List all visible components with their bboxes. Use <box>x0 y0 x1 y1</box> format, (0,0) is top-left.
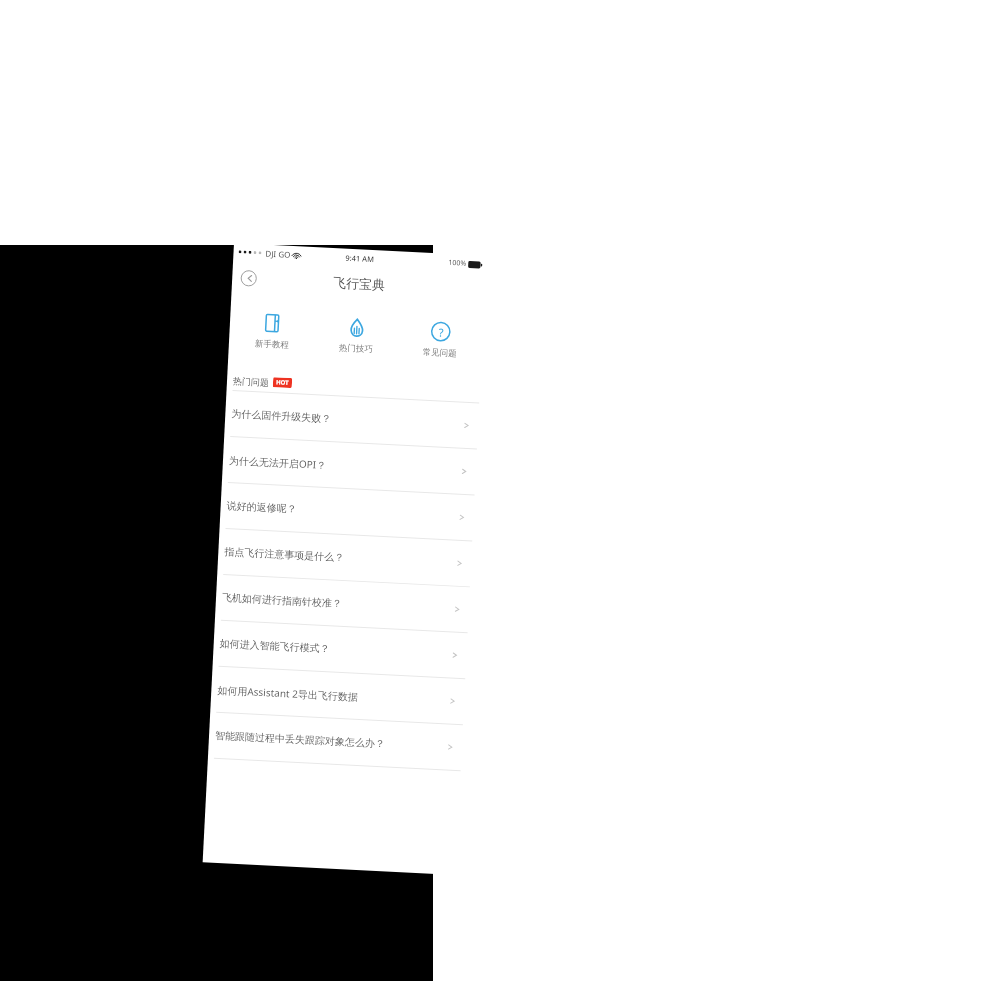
button[interactable]: 热门技巧 <box>313 302 400 368</box>
button[interactable]: 指点飞行注意事项是什么？ <box>217 529 472 586</box>
staticText: 新手教程 <box>255 338 289 351</box>
staticText: 飞机如何进行指南针校准？ <box>222 591 454 616</box>
staticText: 为什么无法开启OPI？ <box>229 453 461 479</box>
button[interactable]: 如何进入智能飞行模式？ <box>213 620 468 678</box>
button[interactable]: 为什么无法开启OPI？ <box>222 437 477 494</box>
staticText: 飞行宝典 <box>333 274 385 293</box>
staticText: HOT <box>276 378 289 387</box>
staticText: 如何进入智能飞行模式？ <box>219 637 452 661</box>
button[interactable]: 说好的返修呢？ <box>220 483 475 540</box>
button[interactable]: Back <box>240 269 258 287</box>
staticText: 常见问题 <box>422 347 457 359</box>
staticText: 智能跟随过程中丢失跟踪对象怎么办？ <box>215 729 447 753</box>
staticText: 为什么固件升级失败？ <box>231 407 463 432</box>
button[interactable]: 智能跟随过程中丢失跟踪对象怎么办？ <box>208 712 463 770</box>
staticText: 说好的返修呢？ <box>226 499 459 524</box>
button[interactable]: 如何用Assistant 2导出飞行数据 <box>210 666 465 724</box>
staticText: 9:41 AM <box>345 253 375 264</box>
button[interactable]: 为什么固件升级失败？ <box>224 391 479 448</box>
staticText: ? <box>438 324 444 340</box>
button[interactable]: 新手教程 <box>228 298 316 364</box>
staticText: 100% <box>448 258 466 269</box>
button[interactable]: 飞机如何进行指南针校准？ <box>215 575 470 632</box>
staticText: 热门技巧 <box>338 342 373 355</box>
staticText: 如何用Assistant 2导出飞行数据 <box>217 683 449 708</box>
staticText: 指点飞行注意事项是什么？ <box>224 545 456 570</box>
button[interactable]: ? <box>397 306 484 373</box>
staticText: 热门问题 <box>233 375 269 388</box>
staticText: DJI GO <box>265 248 291 260</box>
